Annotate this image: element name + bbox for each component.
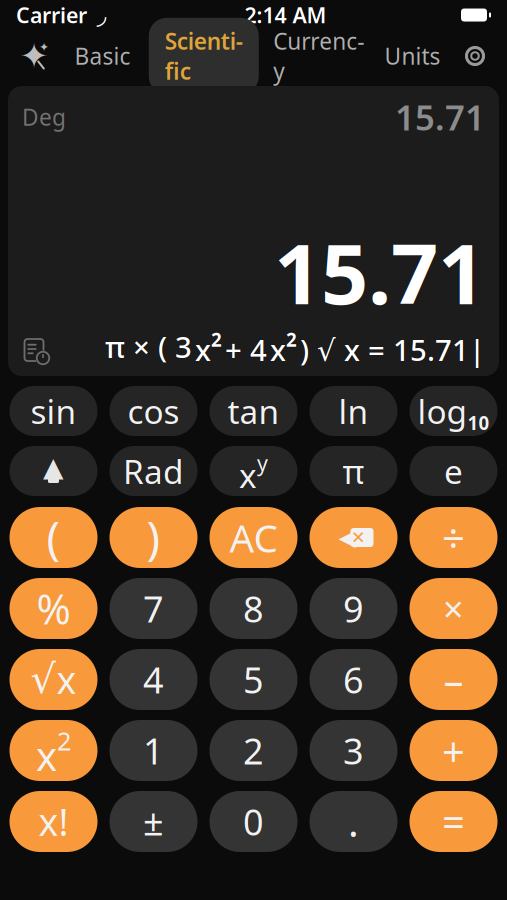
staticText: x — [36, 729, 57, 782]
button[interactable]: e — [409, 446, 497, 496]
button[interactable]: Backspace — [309, 507, 397, 568]
staticText: 0 — [243, 798, 264, 845]
staticText: Scientific — [165, 26, 243, 86]
button[interactable]: 6 — [309, 649, 397, 710]
button[interactable]: x2 — [9, 720, 97, 781]
staticText: 2 — [211, 327, 222, 352]
staticText: ( — [46, 507, 60, 568]
staticText: + — [442, 724, 465, 777]
staticText: – — [443, 653, 463, 706]
button[interactable]: 1 — [109, 720, 197, 781]
button[interactable]: x — [209, 446, 297, 496]
staticText: ) √ x = 15.71| — [300, 330, 485, 369]
staticText: ln — [338, 389, 368, 433]
staticText: . — [348, 795, 359, 848]
staticText: Deg — [22, 102, 66, 132]
button[interactable]: 2 — [209, 720, 297, 781]
staticText: × — [443, 585, 464, 632]
staticText: ▲ — [43, 452, 64, 482]
button[interactable]: 3 — [309, 720, 397, 781]
staticText: π — [342, 449, 364, 493]
button[interactable]: Second function — [9, 446, 97, 496]
button[interactable]: ( — [9, 507, 97, 568]
staticText: 1 — [143, 727, 164, 774]
staticText: tan — [227, 389, 279, 433]
button[interactable]: – — [409, 649, 497, 710]
staticText: π × ( 3 — [105, 327, 192, 366]
button[interactable]: . — [309, 791, 397, 852]
button[interactable]: 7 — [109, 578, 197, 639]
button[interactable]: 5 — [209, 649, 297, 710]
button[interactable]: √x — [9, 649, 97, 710]
staticText: ± — [143, 798, 164, 845]
button[interactable]: Magic — [12, 34, 56, 78]
staticText: ÷ — [442, 511, 465, 564]
staticText: Units — [385, 41, 441, 71]
staticText: 9 — [343, 585, 364, 632]
button[interactable]: Rad — [109, 446, 197, 496]
staticText: x — [239, 453, 257, 497]
staticText: + 4 — [225, 330, 267, 369]
staticText: √ — [30, 657, 55, 702]
staticText: ◞ — [96, 1, 106, 29]
button[interactable]: + — [409, 720, 497, 781]
staticText: ) — [146, 507, 160, 568]
staticText: ◀ — [338, 525, 355, 550]
staticText: log — [417, 389, 467, 433]
staticText: 15.71 — [395, 94, 485, 140]
staticText: Basic — [74, 41, 130, 71]
staticText: 2 — [243, 727, 264, 774]
button[interactable]: ± — [109, 791, 197, 852]
button[interactable]: tan — [209, 386, 297, 436]
button[interactable]: Units — [379, 33, 447, 79]
button[interactable]: Basic — [64, 33, 140, 79]
staticText: 4 — [143, 656, 164, 703]
staticText: Carrier — [16, 1, 87, 29]
button[interactable]: x! — [9, 791, 97, 852]
button[interactable]: × — [409, 578, 497, 639]
button[interactable]: π — [309, 446, 397, 496]
staticText: 3 — [343, 727, 364, 774]
staticText: 2:14 AM — [244, 1, 326, 29]
button[interactable]: log — [409, 386, 497, 436]
button[interactable]: ln — [309, 386, 397, 436]
staticText: Rad — [123, 449, 184, 493]
button[interactable]: = — [409, 791, 497, 852]
button[interactable]: Currency — [267, 18, 370, 94]
staticText: ✦ — [19, 36, 48, 76]
staticText: cos — [127, 389, 179, 433]
staticText: AC — [229, 512, 277, 563]
staticText: x — [56, 655, 76, 704]
staticText: 2 — [57, 724, 71, 757]
button[interactable]: % — [9, 578, 97, 639]
staticText: 8 — [243, 585, 264, 632]
staticText: x — [195, 330, 211, 369]
staticText: 15.71 — [274, 217, 485, 327]
button[interactable]: 8 — [209, 578, 297, 639]
button[interactable]: 0 — [209, 791, 297, 852]
button[interactable]: AC — [209, 507, 297, 568]
staticText: 2 — [286, 327, 297, 352]
staticText: = — [442, 795, 465, 848]
button[interactable]: ) — [109, 507, 197, 568]
button[interactable]: Settings — [455, 36, 495, 76]
button[interactable]: Scientific — [149, 18, 259, 94]
staticText: y — [257, 449, 268, 477]
staticText: x! — [38, 797, 68, 846]
staticText: 5 — [243, 656, 264, 703]
staticText: 10 — [467, 410, 489, 435]
staticText: e — [444, 449, 463, 493]
button[interactable]: cos — [109, 386, 197, 436]
staticText: x — [270, 330, 286, 369]
staticText: % — [36, 581, 70, 636]
button[interactable]: 4 — [109, 649, 197, 710]
button[interactable]: sin — [9, 386, 97, 436]
staticText: Currency — [273, 26, 364, 86]
staticText: 7 — [143, 585, 164, 632]
staticText: sin — [30, 389, 76, 433]
staticText: 6 — [343, 656, 364, 703]
button[interactable]: ÷ — [409, 507, 497, 568]
staticText: ✦ — [39, 40, 49, 54]
staticText: ✕ — [351, 528, 366, 547]
button[interactable]: 9 — [309, 578, 397, 639]
